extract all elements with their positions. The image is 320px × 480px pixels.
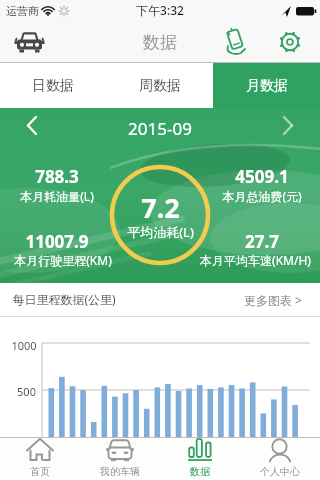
- button[interactable]: [12, 28, 54, 58]
- staticText: 27.7: [245, 230, 279, 253]
- staticText: 本月耗油量(L): [20, 188, 94, 204]
- button[interactable]: [272, 26, 308, 60]
- button[interactable]: 首页: [0, 438, 80, 480]
- button[interactable]: [218, 26, 254, 60]
- button[interactable]: 数据: [160, 438, 240, 480]
- button[interactable]: 月数据: [213, 63, 320, 108]
- button[interactable]: 日数据: [0, 63, 106, 108]
- staticText: 个人中心: [260, 465, 300, 478]
- staticText: 2015-09: [128, 117, 192, 140]
- staticText: 平均油耗(L): [127, 223, 194, 241]
- staticText: 日数据: [32, 77, 74, 95]
- staticText: 周数据: [139, 77, 181, 95]
- staticText: 月数据: [246, 77, 288, 95]
- button[interactable]: [270, 114, 300, 144]
- staticText: 11007.9: [25, 230, 89, 253]
- staticText: 本月平均车速(KM/H): [200, 252, 311, 268]
- staticText: 数据: [190, 465, 210, 478]
- staticText: 数据: [143, 32, 177, 53]
- button[interactable]: 周数据: [106, 63, 213, 108]
- button[interactable]: 个人中心: [240, 438, 320, 480]
- staticText: 1000: [11, 338, 37, 353]
- staticText: 运营商: [6, 4, 39, 18]
- staticText: 我的车辆: [100, 465, 140, 478]
- staticText: 下午3:32: [136, 2, 184, 18]
- staticText: 7.2: [141, 189, 180, 226]
- staticText: 更多图表 >: [244, 292, 302, 308]
- button[interactable]: 更多图表 >: [230, 283, 315, 317]
- button[interactable]: 我的车辆: [80, 438, 160, 480]
- staticText: 本月行驶里程(KM): [14, 252, 112, 268]
- staticText: 首页: [30, 465, 50, 478]
- staticText: 4509.1: [235, 165, 289, 188]
- staticText: 每日里程数据(公里): [12, 291, 116, 307]
- staticText: 本月总油费(元): [222, 188, 302, 204]
- staticText: 500: [17, 384, 36, 399]
- staticText: 788.3: [35, 165, 79, 188]
- button[interactable]: [20, 114, 50, 144]
